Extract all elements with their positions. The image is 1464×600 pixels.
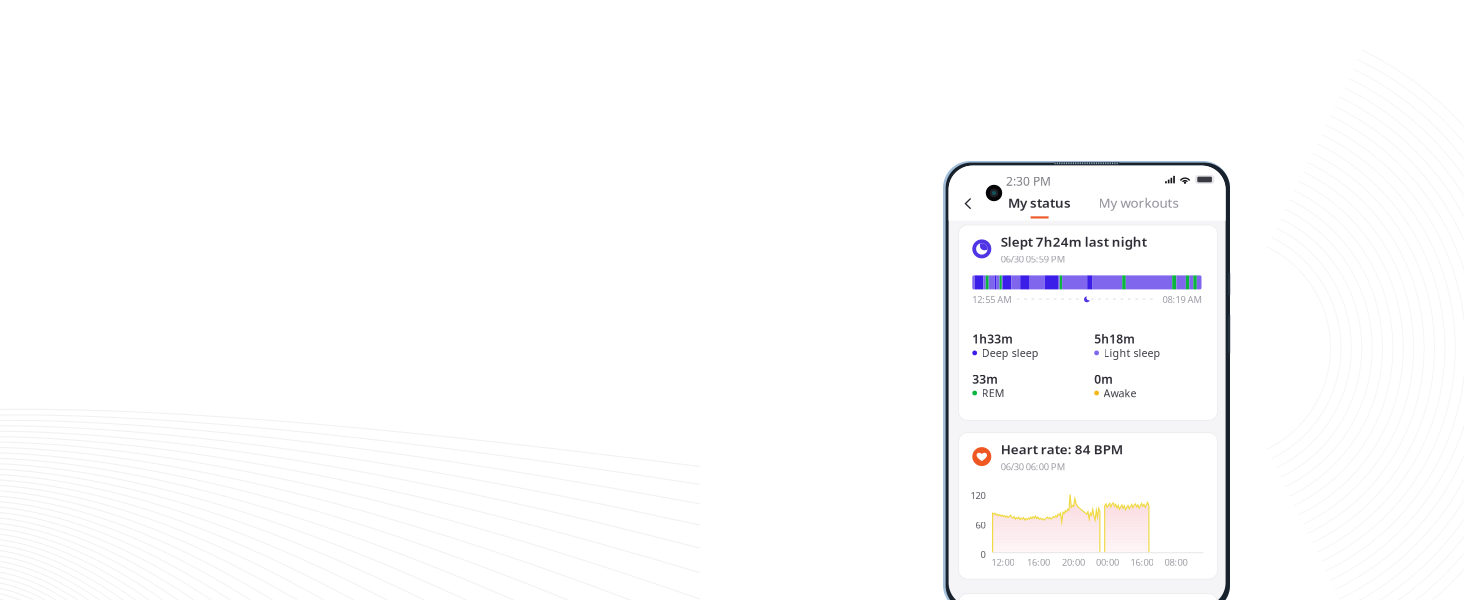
staticText: Light sleep xyxy=(1104,346,1161,360)
staticText: My workouts xyxy=(1099,194,1179,211)
staticText: 120 xyxy=(971,489,986,502)
staticText: Heart rate: 84 BPM xyxy=(1001,440,1123,458)
staticText: 00:00 xyxy=(1096,556,1119,568)
staticText: Awake xyxy=(1104,386,1137,400)
staticText: 16:00 xyxy=(1027,556,1050,568)
staticText: 5h18m xyxy=(1094,331,1135,347)
staticText: 12:55 AM xyxy=(972,293,1011,306)
staticText: REM xyxy=(982,386,1005,400)
staticText: 06/30 05:59 PM xyxy=(1001,253,1065,265)
button[interactable]: My workouts xyxy=(1091,193,1187,219)
staticText: Slept 7h24m last night xyxy=(1001,233,1147,250)
button[interactable]: Back xyxy=(956,192,980,216)
staticText: 60 xyxy=(976,519,986,531)
staticText: 2:30 PM xyxy=(1006,173,1051,189)
staticText: 20:00 xyxy=(1062,556,1085,568)
button[interactable]: My status xyxy=(996,193,1084,219)
staticText: My status xyxy=(1008,194,1071,211)
staticText: 0 xyxy=(981,548,986,560)
staticText: 12:00 xyxy=(991,556,1014,568)
staticText: 08:19 AM xyxy=(1162,293,1201,306)
staticText: 33m xyxy=(972,371,998,387)
staticText: 08:00 xyxy=(1164,556,1187,568)
staticText: 16:00 xyxy=(1130,556,1153,568)
staticText: Deep sleep xyxy=(982,346,1039,360)
staticText: 06/30 06:00 PM xyxy=(1001,460,1065,473)
staticText: 1h33m xyxy=(972,331,1013,347)
staticText: 0m xyxy=(1094,371,1113,387)
